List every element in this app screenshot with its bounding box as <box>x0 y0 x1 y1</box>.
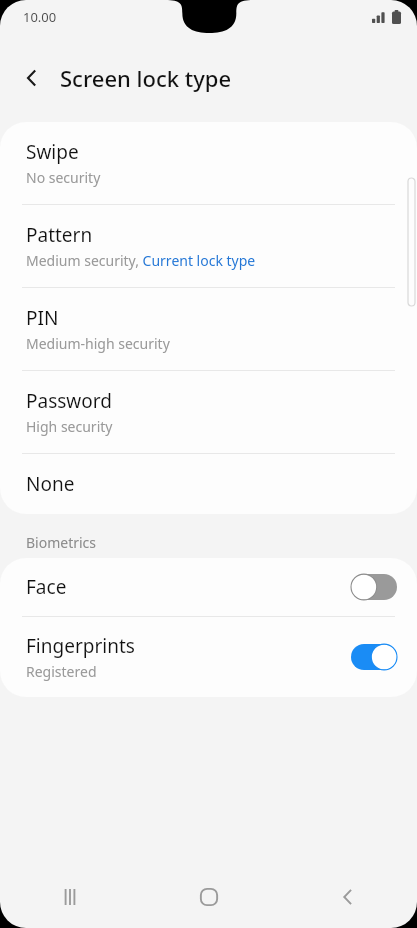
button[interactable]: Fingerprints <box>0 617 417 697</box>
button[interactable]: Pattern <box>0 205 417 287</box>
button[interactable]: Back <box>278 866 417 928</box>
staticText: Medium security, Current lock type <box>26 251 256 270</box>
staticText: Pattern <box>26 222 93 248</box>
button[interactable]: PIN <box>0 288 417 370</box>
button[interactable]: None <box>0 454 417 514</box>
button[interactable]: Recents <box>0 866 139 928</box>
staticText: Password <box>26 388 112 414</box>
staticText: Medium-high security <box>26 334 170 353</box>
button[interactable]: Face <box>0 558 417 616</box>
staticText: Registered <box>26 662 97 681</box>
button[interactable]: On <box>351 644 397 670</box>
staticText: Swipe <box>26 139 79 165</box>
staticText: Fingerprints <box>26 633 135 659</box>
staticText: No security <box>26 168 101 187</box>
button[interactable]: Swipe <box>0 122 417 204</box>
button[interactable]: Back <box>10 56 54 100</box>
button[interactable]: Password <box>0 371 417 453</box>
staticText: High security <box>26 417 113 436</box>
staticText: None <box>26 471 75 497</box>
staticText: Biometrics <box>26 533 97 552</box>
staticText: PIN <box>26 305 59 331</box>
staticText: Face <box>26 574 67 600</box>
staticText: Screen lock type <box>60 63 232 93</box>
button[interactable]: Home <box>139 866 278 928</box>
staticText: 10.00 <box>23 8 57 26</box>
button[interactable]: Off <box>351 574 397 600</box>
